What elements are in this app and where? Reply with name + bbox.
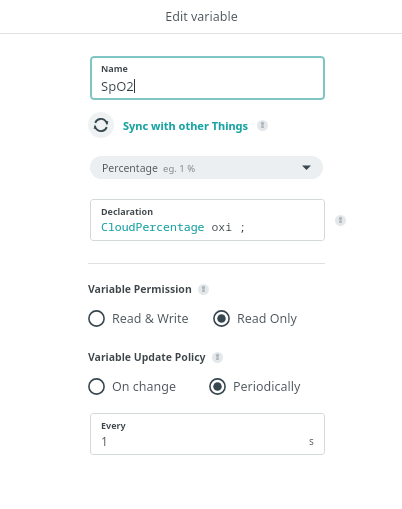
staticText: CloudPercentage oxi ; [101,219,246,235]
button[interactable]: Name [90,56,325,100]
staticText: Sync with other Things [123,118,249,133]
button[interactable]: On change [88,378,176,395]
staticText: Periodically [233,378,301,395]
staticText: SpO2 [101,77,134,95]
staticText: On change [112,378,176,395]
staticText: Percentage eg. 1 % [102,161,196,175]
staticText: Declaration [101,205,153,217]
button[interactable]: Variable type [90,156,323,179]
button[interactable]: Read & Write [88,310,189,327]
staticText: Variable Update Policy [88,350,206,364]
button[interactable]: Sync with other Things [88,112,268,138]
staticText: Read Only [237,310,297,327]
staticText: Variable Permission [88,282,192,296]
staticText: Edit variable [165,8,238,25]
staticText: Read & Write [112,310,189,327]
button[interactable]: Read Only [213,310,297,327]
button[interactable]: Periodically [209,378,301,395]
staticText: Every [101,419,126,431]
button[interactable]: Declaration [90,199,325,241]
staticText: s [309,434,314,448]
button[interactable]: Every [90,413,325,455]
staticText: 1 [101,433,108,449]
staticText: Name [101,62,128,74]
